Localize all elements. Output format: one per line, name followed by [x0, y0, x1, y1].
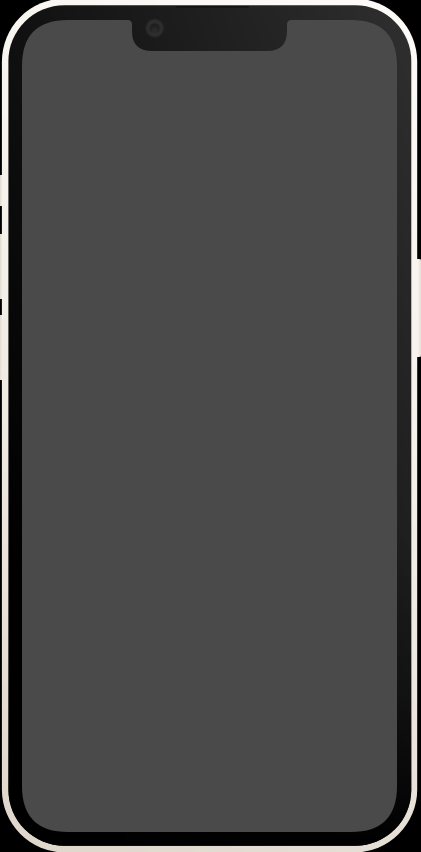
- button[interactable]: [0, 0, 421, 852]
